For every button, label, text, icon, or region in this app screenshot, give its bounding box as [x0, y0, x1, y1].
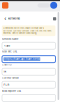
staticText: Currency Symbol: [2, 77, 19, 79]
staticText: ‹: [4, 15, 6, 22]
button[interactable]: Flare: [2, 42, 55, 49]
staticText: FLR: [4, 83, 10, 86]
button[interactable]: Menu: [53, 17, 56, 20]
button[interactable]: FLR: [2, 81, 55, 88]
staticText: Networks: [7, 17, 19, 20]
staticText: Network Name: [2, 38, 18, 40]
button[interactable]: [2, 94, 55, 101]
staticText: https://flare-api.flare.netw: [4, 57, 40, 61]
button[interactable]: ‹: [4, 15, 19, 22]
staticText: New RPC URL: [2, 50, 17, 53]
staticText: 14: [4, 70, 7, 73]
button[interactable]: 14: [2, 68, 55, 75]
staticText: Chain ID: [2, 63, 12, 66]
button[interactable]: https://flare-api.flare.netw: [2, 56, 55, 63]
staticText: A network with this chain ID may use a d…: [3, 27, 51, 34]
staticText: Flare: [4, 44, 11, 47]
staticText: Block Explorer URL: [2, 90, 21, 92]
button[interactable]: Account: [50, 2, 57, 9]
button[interactable]: App: [2, 2, 8, 9]
